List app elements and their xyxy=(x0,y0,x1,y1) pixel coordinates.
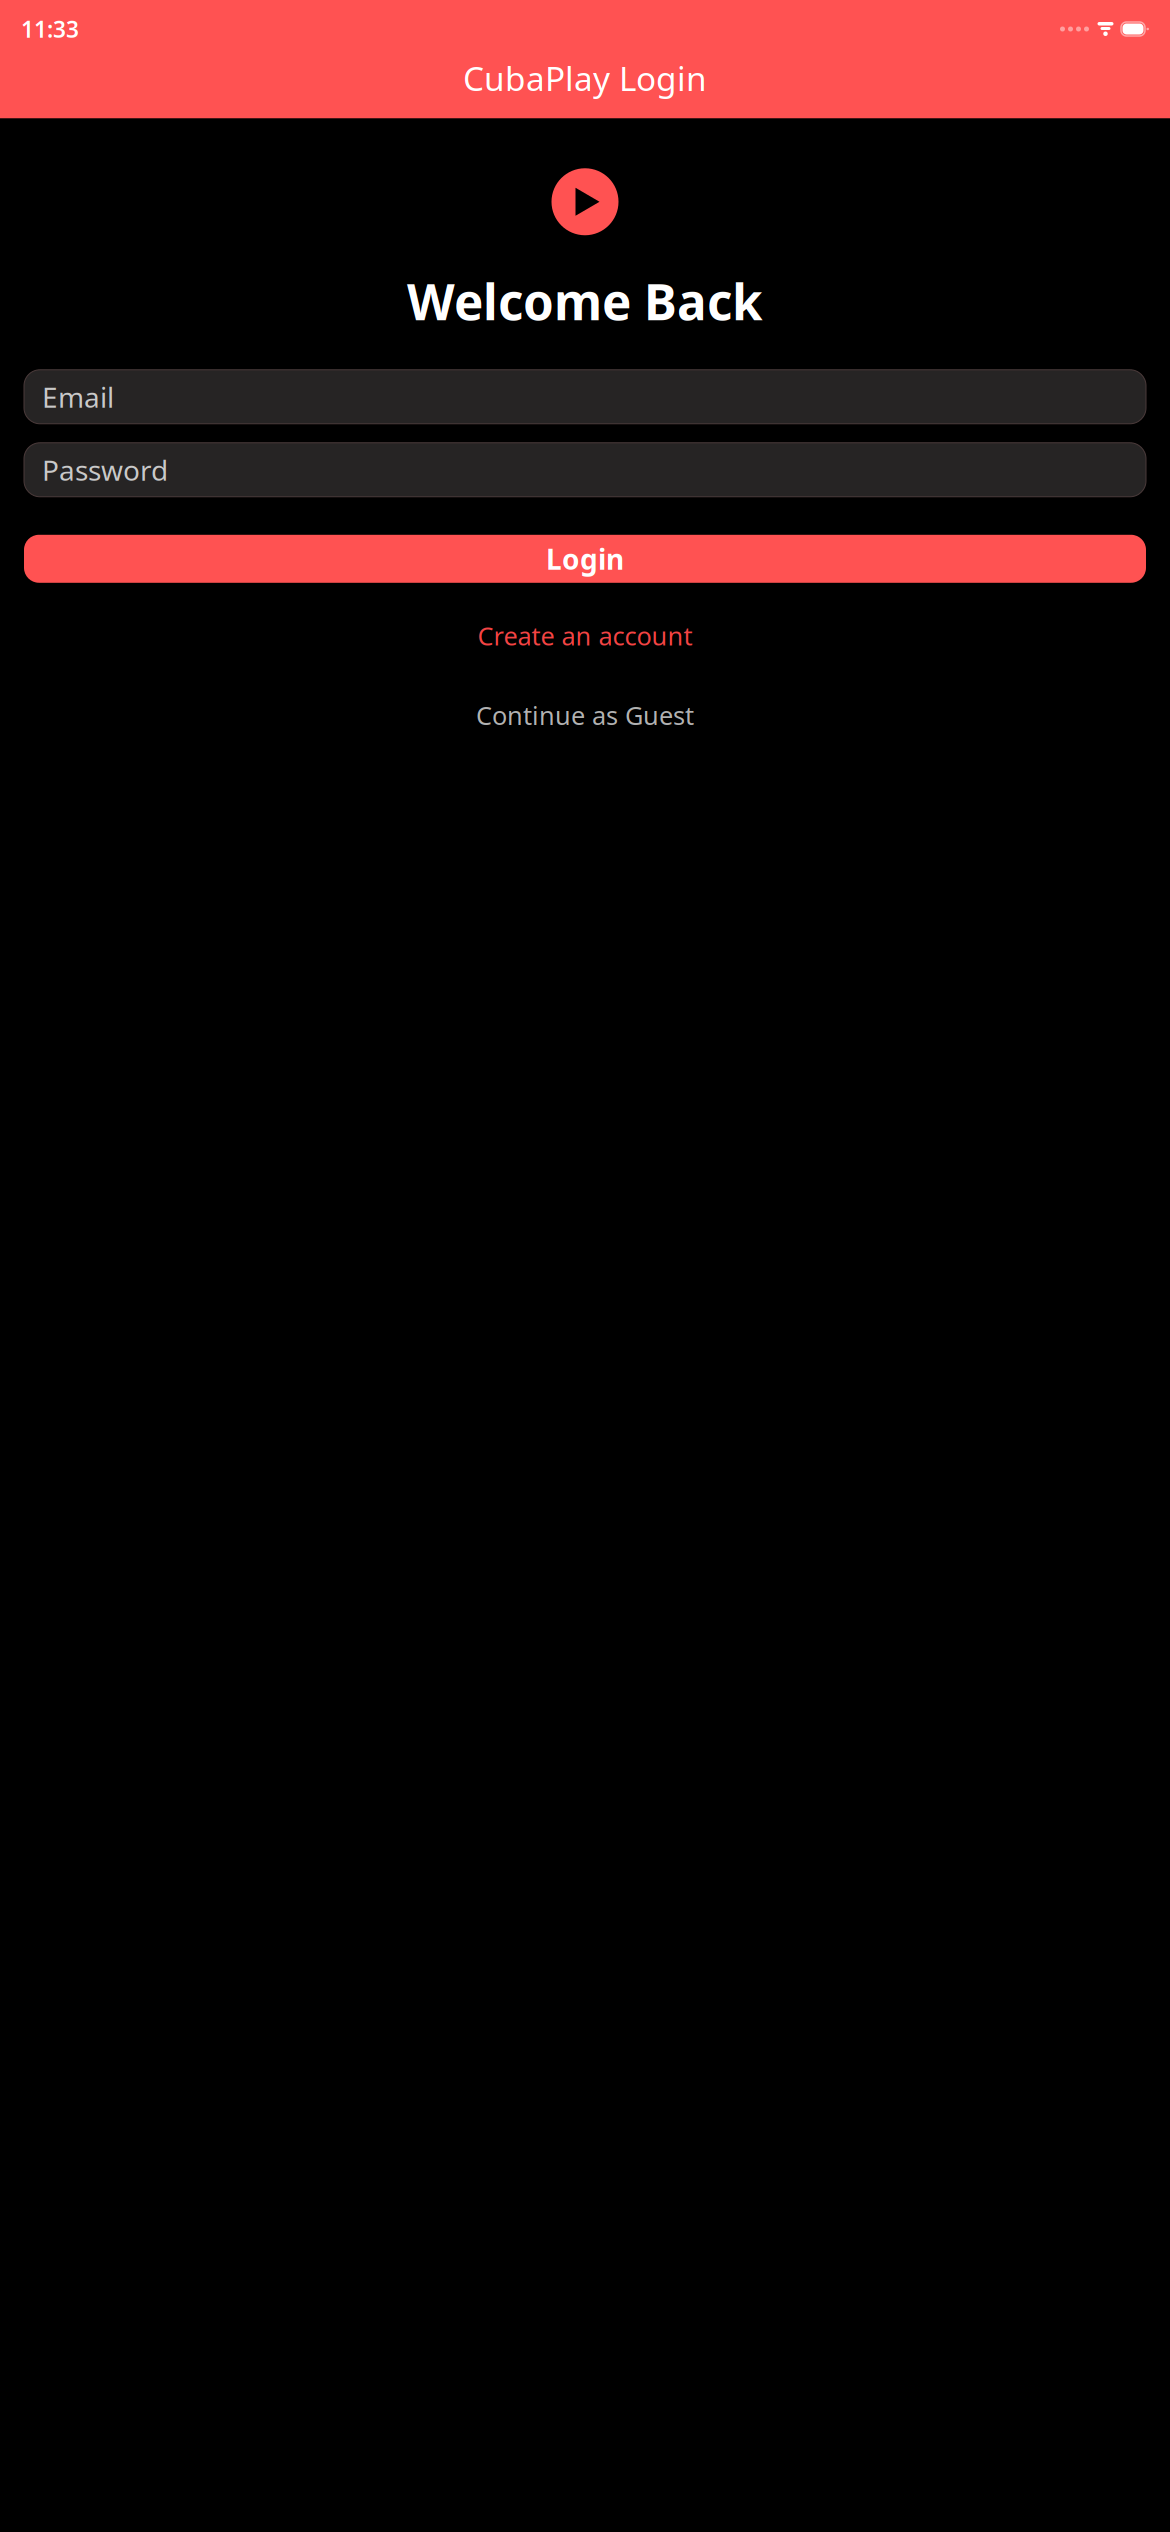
staticText: Login xyxy=(546,540,624,577)
staticText: Password xyxy=(42,451,168,488)
staticText: Continue as Guest xyxy=(476,698,694,732)
button[interactable]: Login xyxy=(24,535,1146,583)
button[interactable]: Create an account xyxy=(24,609,1146,662)
staticText: Create an account xyxy=(477,619,692,652)
staticText: Welcome Back xyxy=(407,268,763,334)
staticText: Email xyxy=(42,378,114,415)
staticText: 11:33 xyxy=(21,14,79,44)
button[interactable]: Continue as Guest xyxy=(24,688,1146,742)
staticText: CubaPlay Login xyxy=(463,56,707,100)
